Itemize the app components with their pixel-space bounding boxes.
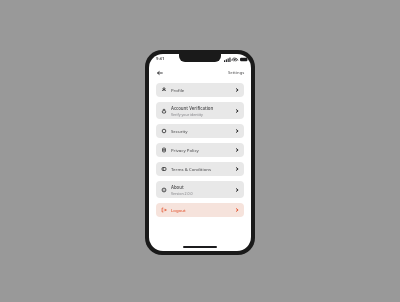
button[interactable]: Logout <box>156 203 244 217</box>
staticText: 9:41 <box>156 56 165 62</box>
button[interactable]: Settings <box>228 70 245 76</box>
staticText: Logout <box>171 207 186 213</box>
staticText: Privacy Policy <box>171 147 199 153</box>
button[interactable]: Security <box>156 124 244 138</box>
button[interactable]: About <box>156 181 244 198</box>
button[interactable]: Account Verification <box>156 102 244 119</box>
button[interactable]: Privacy Policy <box>156 143 244 157</box>
button[interactable]: Back <box>155 68 165 78</box>
staticText: Profile <box>171 87 185 93</box>
staticText: Terms & Conditions <box>171 166 212 172</box>
staticText: Version 2.0.0 <box>171 191 193 196</box>
staticText: Verify your identity <box>171 112 203 117</box>
staticText: Settings <box>228 70 245 76</box>
staticText: Security <box>171 128 188 134</box>
staticText: About <box>171 184 184 190</box>
button[interactable]: Terms & Conditions <box>156 162 244 176</box>
staticText: Account Verification <box>171 105 214 111</box>
button[interactable]: Profile <box>156 83 244 97</box>
